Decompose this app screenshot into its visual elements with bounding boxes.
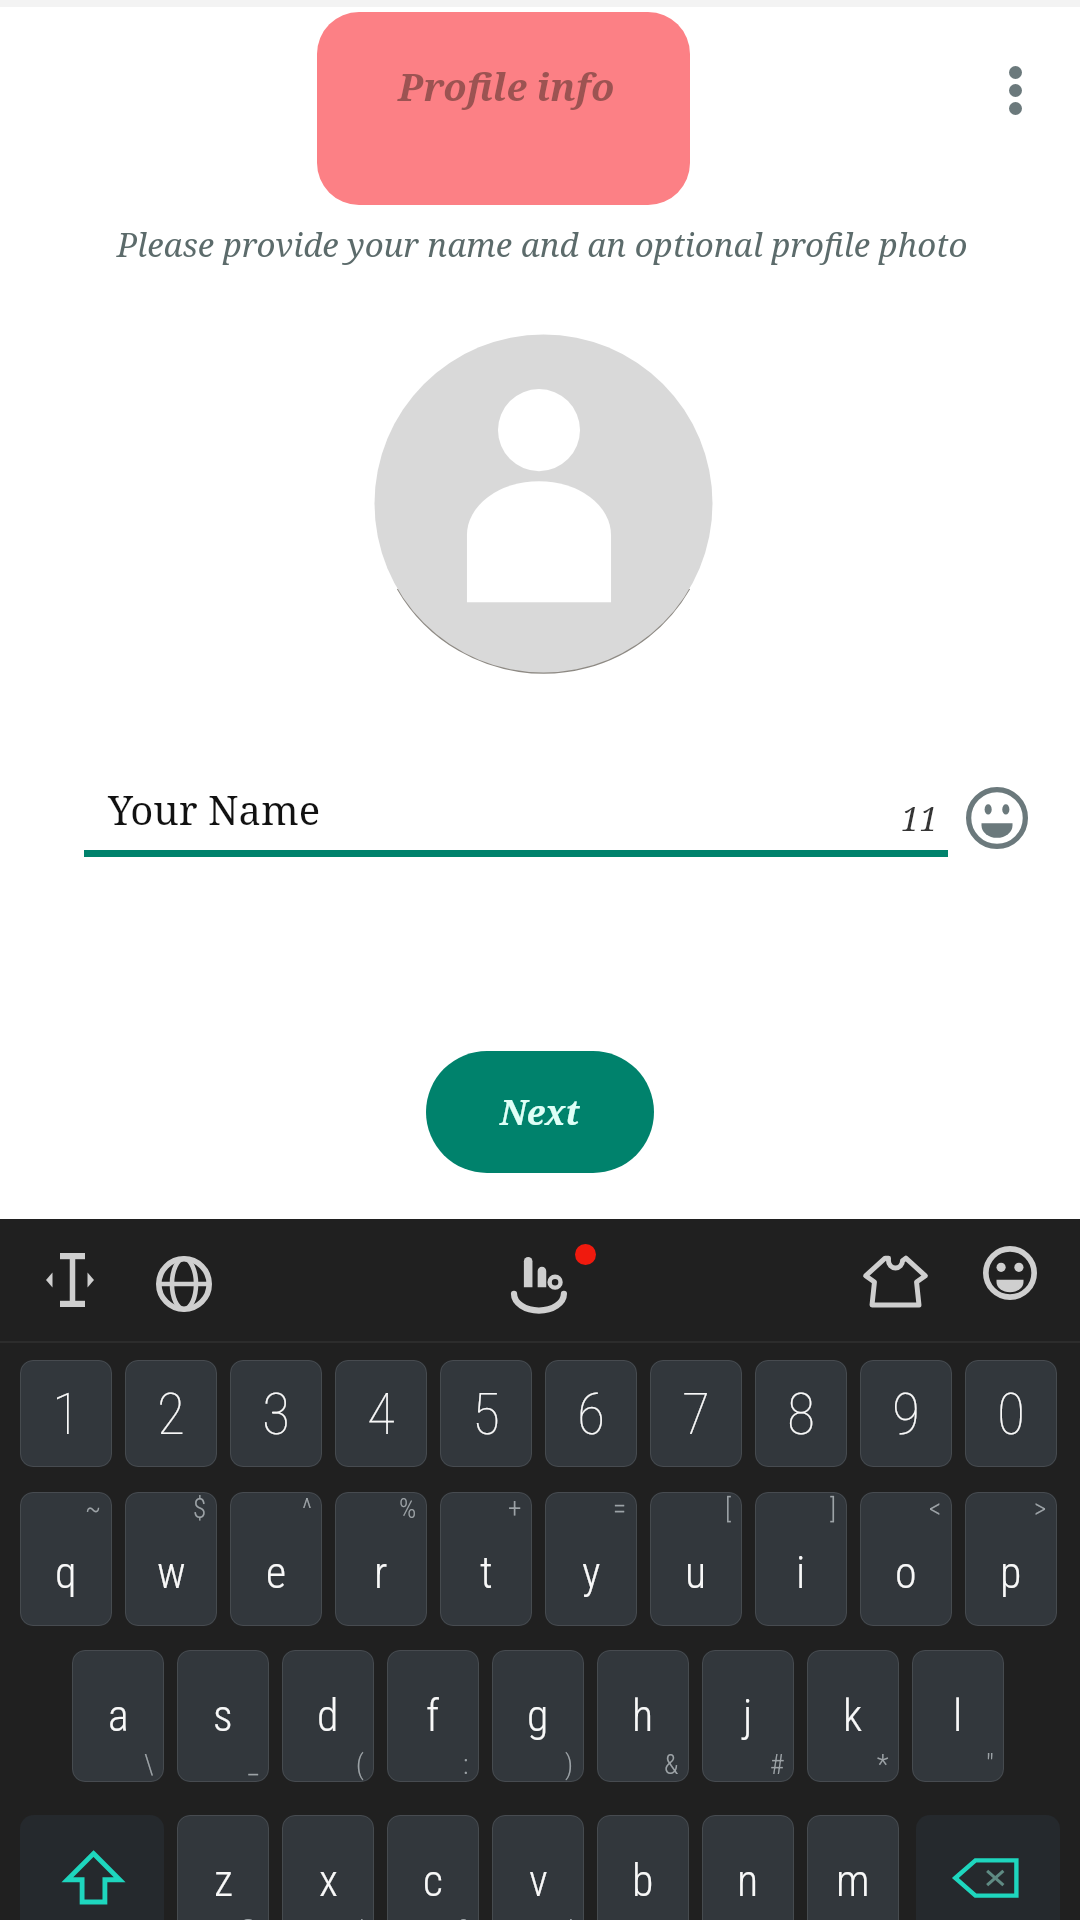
staticText: : <box>463 1749 469 1781</box>
button[interactable]: p <box>965 1492 1057 1626</box>
button[interactable]: e <box>230 1492 322 1626</box>
button[interactable]: 6 <box>545 1360 637 1467</box>
staticText: l <box>953 1690 963 1742</box>
button[interactable]: 7 <box>650 1360 742 1467</box>
button[interactable]: Add profile photo <box>374 334 713 673</box>
staticText: Next <box>500 1089 580 1135</box>
button[interactable]: Next <box>426 1051 654 1173</box>
staticText: e <box>266 1547 287 1599</box>
staticText: s <box>213 1690 233 1742</box>
staticText: = <box>613 1493 627 1525</box>
staticText: # <box>770 1749 784 1781</box>
staticText: 8 <box>787 1380 816 1448</box>
button[interactable]: d <box>282 1650 374 1782</box>
button[interactable]: m <box>807 1815 899 1920</box>
button[interactable]: Keyboard theme <box>860 1250 931 1312</box>
staticText: [ <box>725 1493 732 1525</box>
button[interactable]: s <box>177 1650 269 1782</box>
staticText: 11 <box>901 796 938 841</box>
staticText: u <box>685 1547 707 1599</box>
staticText: v <box>529 1855 548 1907</box>
staticText: h <box>632 1690 654 1742</box>
staticText: c <box>423 1855 443 1907</box>
button[interactable]: g <box>492 1650 584 1782</box>
staticText: 2 <box>157 1380 186 1448</box>
button[interactable]: Emoji keyboard <box>978 1241 1042 1305</box>
staticText: @ <box>237 1914 259 1920</box>
button[interactable]: Backspace <box>916 1815 1060 1920</box>
button[interactable]: k <box>807 1650 899 1782</box>
staticText: y <box>582 1547 601 1599</box>
button[interactable]: q <box>20 1492 112 1626</box>
button[interactable]: b <box>597 1815 689 1920</box>
staticText: q <box>55 1547 77 1599</box>
staticText: \ <box>144 1749 154 1781</box>
staticText: + <box>508 1493 522 1525</box>
button[interactable]: Shift <box>20 1815 164 1920</box>
button[interactable]: h <box>597 1650 689 1782</box>
button[interactable]: i <box>755 1492 847 1626</box>
button[interactable]: t <box>440 1492 532 1626</box>
staticText: 9 <box>892 1380 921 1448</box>
staticText: a <box>108 1690 129 1742</box>
button[interactable]: o <box>860 1492 952 1626</box>
staticText: 5 <box>472 1380 501 1448</box>
staticText: / <box>354 1914 364 1920</box>
staticText: f <box>426 1690 440 1742</box>
button[interactable]: Change language <box>141 1241 227 1327</box>
staticText: ~ <box>85 1493 102 1525</box>
button[interactable]: x <box>282 1815 374 1920</box>
staticText: o <box>895 1547 917 1599</box>
staticText: 3 <box>262 1380 291 1448</box>
staticText: 7 <box>682 1380 711 1448</box>
button[interactable]: Profile info <box>317 12 690 205</box>
staticText: 4 <box>367 1380 396 1448</box>
button[interactable]: 8 <box>755 1360 847 1467</box>
button[interactable]: l <box>912 1650 1004 1782</box>
button[interactable]: Voice input <box>508 1251 572 1315</box>
staticText: > <box>1034 1493 1047 1525</box>
button[interactable]: 2 <box>125 1360 217 1467</box>
button[interactable]: c <box>387 1815 479 1920</box>
button[interactable]: v <box>492 1815 584 1920</box>
staticText: ! <box>568 1914 574 1920</box>
button[interactable]: Emoji <box>954 775 1040 861</box>
button[interactable]: 1 <box>20 1360 112 1467</box>
staticText: $ <box>193 1493 207 1525</box>
button[interactable]: j <box>702 1650 794 1782</box>
staticText: d <box>317 1690 339 1742</box>
button[interactable]: Cursor control <box>25 1247 115 1313</box>
button[interactable]: 4 <box>335 1360 427 1467</box>
staticText: Profile info <box>398 60 615 112</box>
staticText: ) <box>565 1749 574 1781</box>
staticText: ( <box>356 1749 364 1781</box>
staticText: ] <box>830 1493 837 1525</box>
staticText: _ <box>248 1749 259 1781</box>
staticText: x <box>319 1855 338 1907</box>
button[interactable]: r <box>335 1492 427 1626</box>
staticText: 0 <box>997 1380 1026 1448</box>
button[interactable]: a <box>72 1650 164 1782</box>
button[interactable]: 9 <box>860 1360 952 1467</box>
staticText: b <box>632 1855 654 1907</box>
button[interactable]: z <box>177 1815 269 1920</box>
button[interactable]: f <box>387 1650 479 1782</box>
button[interactable]: More options <box>965 40 1065 140</box>
staticText: 6 <box>577 1380 606 1448</box>
button[interactable]: n <box>702 1815 794 1920</box>
staticText: p <box>1000 1547 1022 1599</box>
button[interactable]: 5 <box>440 1360 532 1467</box>
staticText: j <box>743 1690 753 1742</box>
button[interactable]: 3 <box>230 1360 322 1467</box>
button[interactable]: u <box>650 1492 742 1626</box>
button[interactable]: y <box>545 1492 637 1626</box>
staticText: 1 <box>52 1380 81 1448</box>
button[interactable]: w <box>125 1492 217 1626</box>
button[interactable]: 0 <box>965 1360 1057 1467</box>
staticText: Your Name <box>108 782 321 836</box>
staticText: ^ <box>302 1493 312 1525</box>
staticText: Please provide your name and an optional… <box>2 222 1080 267</box>
